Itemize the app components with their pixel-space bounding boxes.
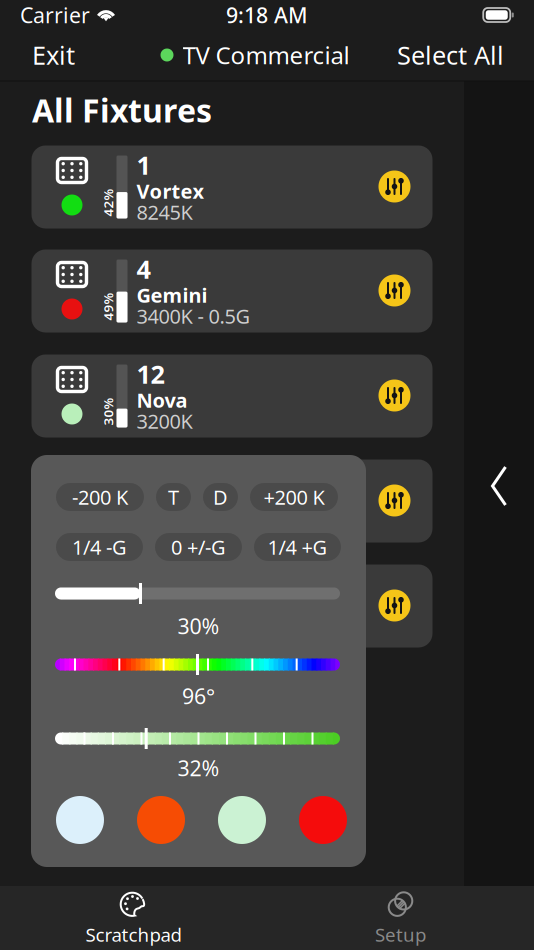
button[interactable]: 30% [31, 354, 432, 437]
staticText: Exit [32, 38, 75, 72]
button[interactable]: Adjust fixture [378, 379, 410, 411]
staticText: Carrier [20, 1, 90, 29]
staticText: 1 [136, 148, 150, 182]
staticText: 0 +/-G [171, 534, 226, 560]
staticText: Nova [136, 387, 187, 413]
button[interactable]: 1/4 -G [56, 533, 143, 561]
staticText: 4 [136, 252, 150, 286]
staticText: 3400K - 0.5G [136, 303, 250, 329]
staticText: T [168, 484, 179, 510]
staticText: 9:18 AM [226, 1, 308, 29]
staticText: Astra [136, 597, 190, 623]
button[interactable]: Colour preset [218, 796, 266, 844]
button[interactable]: Colour preset [56, 796, 104, 844]
staticText: 18 [136, 567, 164, 601]
button[interactable]: Adjust fixture [378, 274, 410, 306]
staticText: Gemini [136, 282, 207, 308]
button[interactable]: Adjust fixture [378, 484, 410, 516]
button[interactable]: 66% [31, 459, 432, 542]
button[interactable]: 1/4 +G [254, 533, 341, 561]
button[interactable]: Colour preset [299, 796, 347, 844]
button[interactable]: Adjust fixture [378, 170, 410, 202]
staticText: TV Commercial [182, 39, 349, 71]
staticText: 32% [177, 754, 219, 782]
button[interactable]: Colour preset [137, 796, 185, 844]
button[interactable]: 42% [31, 145, 432, 228]
staticText: 4100K [136, 618, 192, 644]
staticText: 66% [94, 508, 122, 525]
staticText: All Fixtures [32, 89, 212, 131]
button[interactable]: Select All [383, 29, 518, 81]
button[interactable]: Exit [18, 29, 89, 81]
button[interactable]: 0 +/-G [155, 533, 242, 561]
staticText: 12 [136, 357, 164, 391]
button[interactable]: D [203, 483, 238, 511]
staticText: 49% [94, 298, 122, 315]
staticText: 15 [136, 462, 164, 496]
staticText: -200 K [72, 484, 128, 510]
staticText: 30% [94, 403, 122, 420]
button[interactable]: Expand panel [475, 451, 522, 521]
staticText: Select All [397, 38, 504, 72]
button[interactable]: Setup [267, 886, 534, 950]
button[interactable]: Adjust fixture [378, 589, 410, 621]
staticText: 5600K [136, 513, 192, 539]
staticText: Setup [375, 922, 426, 947]
staticText: 1/4 +G [267, 534, 327, 560]
staticText: 30% [177, 612, 219, 640]
button[interactable]: +200 K [250, 483, 338, 511]
staticText: D [213, 484, 228, 510]
staticText: 8245K [136, 199, 192, 225]
staticText: 1/4 -G [72, 534, 127, 560]
staticText: Vortex [136, 178, 204, 204]
staticText: 96° [182, 682, 215, 710]
staticText: +200 K [263, 484, 324, 510]
button[interactable]: Scratchpad [0, 886, 267, 950]
staticText: Scratchpad [85, 922, 181, 947]
button[interactable]: T [156, 483, 191, 511]
button[interactable]: 49% [31, 249, 432, 332]
button[interactable]: 54% [31, 564, 432, 647]
staticText: Helios [136, 492, 198, 518]
staticText: 42% [94, 194, 122, 211]
button[interactable]: -200 K [56, 483, 144, 511]
staticText: 3200K [136, 408, 192, 434]
